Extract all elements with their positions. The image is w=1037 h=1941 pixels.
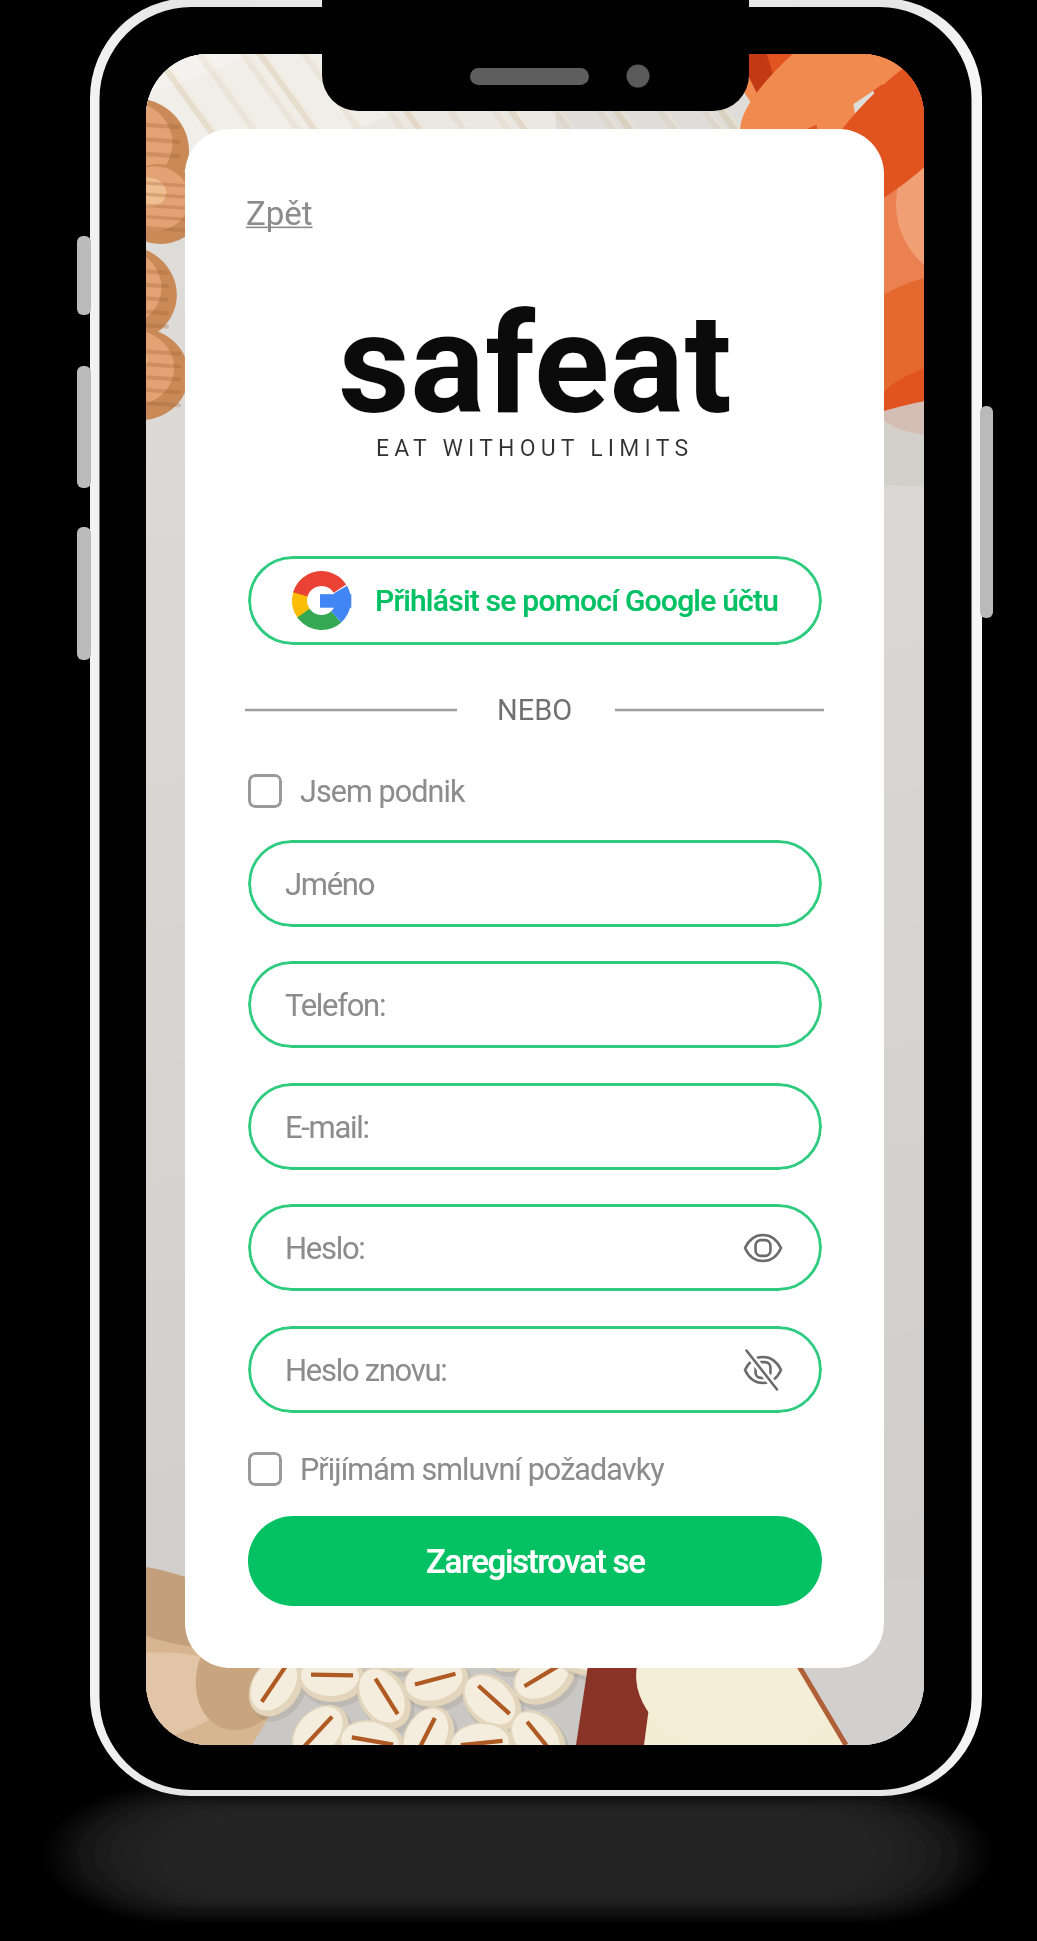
staticText: Přijímám smluvní požadavky [300,1452,664,1486]
button[interactable]: Přihlásit se pomocí Google účtu [248,556,822,645]
button[interactable]: Přijímám smluvní požadavky [248,1452,664,1486]
staticText: EAT WITHOUT LIMITS [376,435,694,462]
staticText: NEBO [497,693,573,727]
button[interactable]: Show password [739,1224,787,1272]
button[interactable]: Telefon: [248,961,822,1048]
staticText: safeat [338,282,732,446]
button[interactable]: Jméno [248,840,822,927]
button[interactable]: Jsem podnik [248,774,465,808]
staticText: Heslo: [285,1230,365,1266]
staticText: Zaregistrovat se [426,1542,645,1581]
staticText: Zpět [246,194,313,233]
button[interactable]: Zaregistrovat se [248,1516,822,1606]
staticText: Heslo znovu: [285,1352,447,1388]
staticText: Přihlásit se pomocí Google účtu [375,583,779,618]
button[interactable]: E-mail: [248,1083,822,1170]
button[interactable]: Heslo: [248,1204,822,1291]
staticText: Jsem podnik [300,774,465,808]
button[interactable]: Zpět [234,182,325,245]
staticText: E-mail: [285,1109,369,1145]
button[interactable]: Hide password [739,1346,787,1394]
staticText: Jméno [285,866,375,902]
staticText: Telefon: [285,987,386,1023]
button[interactable]: Heslo znovu: [248,1326,822,1413]
